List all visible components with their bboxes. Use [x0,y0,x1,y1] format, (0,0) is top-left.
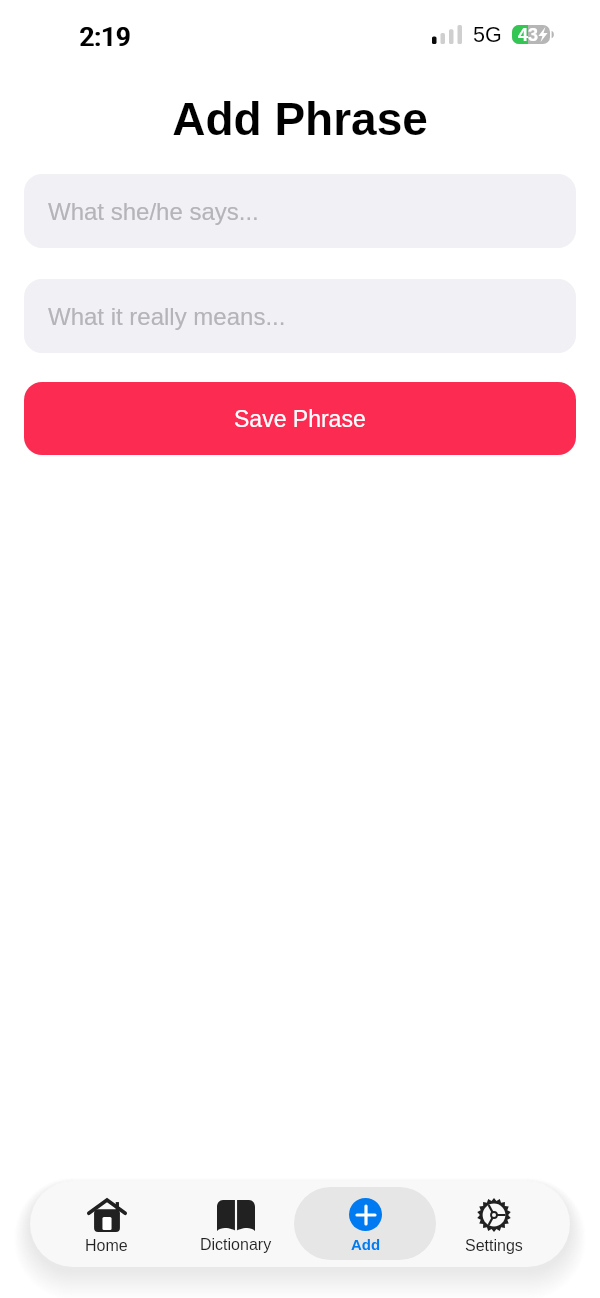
button[interactable]: Save Phrase [24,382,576,455]
button[interactable]: Settings [434,1187,554,1260]
staticText: Add Phrase [0,93,600,144]
staticText: Settings [465,1237,523,1255]
button[interactable]: What it really means... [24,279,576,353]
staticText: Home [85,1237,128,1255]
staticText: Add [351,1236,381,1253]
staticText: 5G [473,23,502,47]
button[interactable]: Add [294,1187,436,1260]
staticText: 2:19 [80,22,132,52]
staticText: Save Phrase [234,406,366,432]
staticText: What she/he says... [48,198,259,225]
staticText: What it really means... [48,303,286,330]
button[interactable]: Home [46,1187,166,1260]
button[interactable]: Dictionary [176,1187,296,1260]
button[interactable]: What she/he says... [24,174,576,248]
staticText: 2:19 [79,22,131,52]
staticText: 43 [518,25,539,44]
staticText: Dictionary [200,1236,272,1254]
